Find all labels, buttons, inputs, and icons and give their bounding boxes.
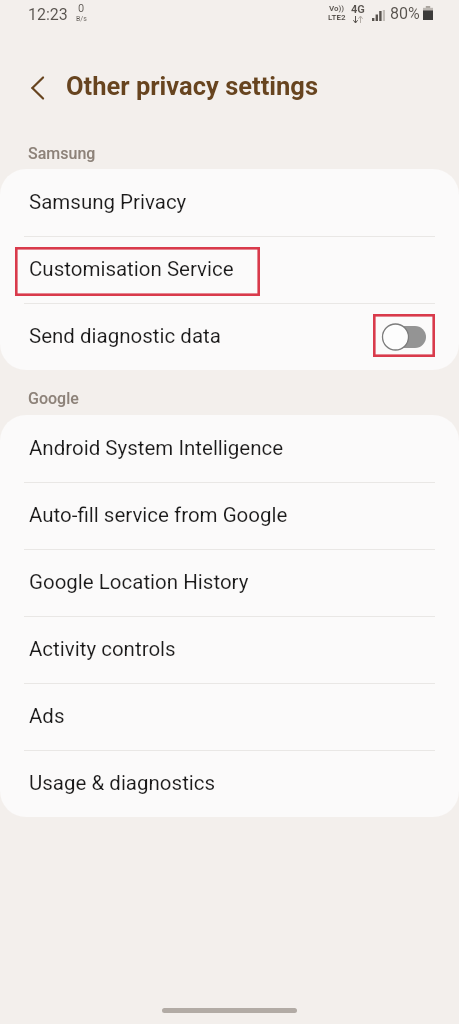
staticText: 0: [78, 2, 85, 15]
staticText: Auto-fill service from Google: [29, 503, 288, 527]
button[interactable]: Back: [16, 66, 60, 110]
staticText: B/s: [76, 15, 87, 23]
button[interactable]: Android System Intelligence: [0, 415, 459, 482]
staticText: Usage & diagnostics: [29, 771, 216, 795]
button[interactable]: Usage & diagnostics: [0, 750, 459, 817]
button[interactable]: Send diagnostic data toggle: [382, 322, 426, 352]
button[interactable]: Send diagnostic data: [0, 303, 459, 370]
staticText: Activity controls: [29, 637, 176, 661]
staticText: Send diagnostic data: [29, 324, 221, 348]
staticText: 12:23: [28, 5, 68, 24]
button[interactable]: Customisation Service: [0, 236, 459, 303]
staticText: Samsung Privacy: [29, 190, 187, 214]
staticText: Google Location History: [29, 570, 249, 594]
staticText: 80%: [390, 4, 420, 23]
button[interactable]: Ads: [0, 683, 459, 750]
staticText: Google: [28, 389, 79, 408]
button[interactable]: Auto-fill service from Google: [0, 482, 459, 549]
staticText: Samsung: [28, 144, 96, 163]
button[interactable]: Samsung Privacy: [0, 169, 459, 236]
button[interactable]: Activity controls: [0, 616, 459, 683]
button[interactable]: Google Location History: [0, 549, 459, 616]
staticText: 4G: [351, 3, 365, 16]
staticText: Ads: [29, 704, 65, 728]
staticText: Android System Intelligence: [29, 436, 284, 460]
staticText: Customisation Service: [29, 257, 234, 281]
staticText: Other privacy settings: [66, 71, 319, 101]
staticText: LTE2: [328, 13, 346, 22]
staticText: Vo)): [329, 4, 345, 13]
